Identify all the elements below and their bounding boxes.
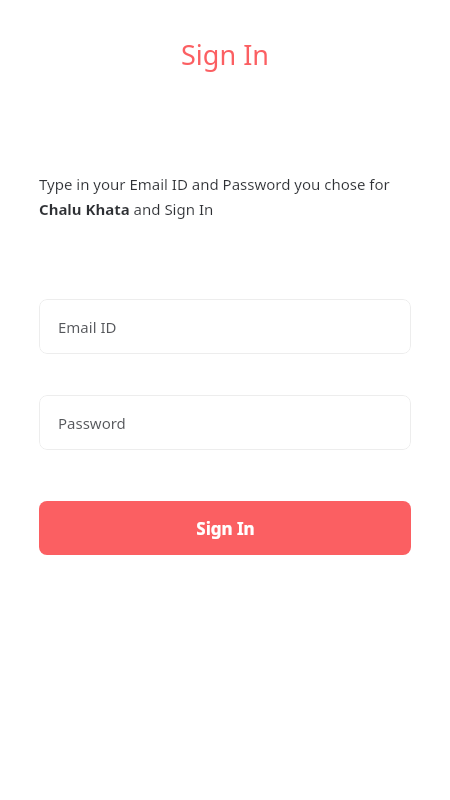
staticText: Email ID xyxy=(58,317,117,337)
staticText: Password xyxy=(58,413,126,433)
staticText: Sign In xyxy=(181,36,269,73)
staticText: Type in your Email ID and Password you c… xyxy=(39,174,411,219)
button[interactable]: Sign In xyxy=(39,501,411,555)
button[interactable]: Password xyxy=(39,395,411,450)
button[interactable]: Email ID xyxy=(39,299,411,354)
staticText: Sign In xyxy=(196,517,255,540)
